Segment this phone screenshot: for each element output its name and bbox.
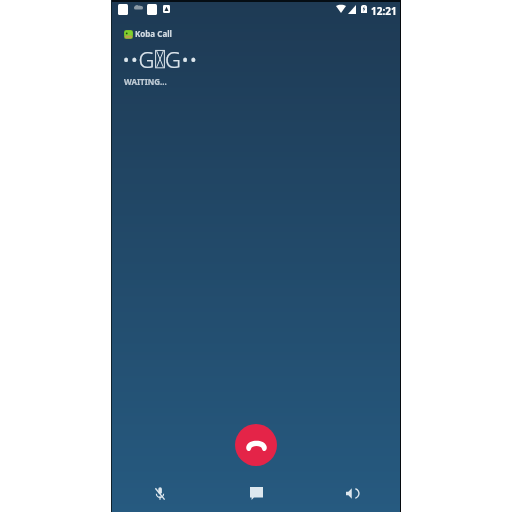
staticText: 12:21 <box>371 4 397 18</box>
staticText: WAITING... <box>124 76 167 87</box>
staticText: Koba Call <box>135 28 172 39</box>
button[interactable]: Message <box>208 475 304 512</box>
staticText: ••G <box>122 44 155 74</box>
button[interactable]: Speaker <box>304 475 400 512</box>
button[interactable]: End call <box>235 424 277 466</box>
button[interactable]: Mute <box>112 475 208 512</box>
staticText: G•• <box>165 44 198 74</box>
